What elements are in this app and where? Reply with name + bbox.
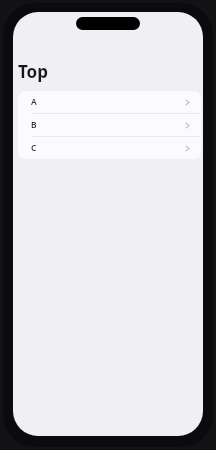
button[interactable]: B <box>18 114 201 136</box>
staticText: B <box>31 119 37 131</box>
staticText: C <box>31 142 37 154</box>
button[interactable]: A <box>18 91 201 113</box>
staticText: Top <box>18 60 48 83</box>
button[interactable]: C <box>18 137 201 159</box>
staticText: A <box>31 96 37 108</box>
